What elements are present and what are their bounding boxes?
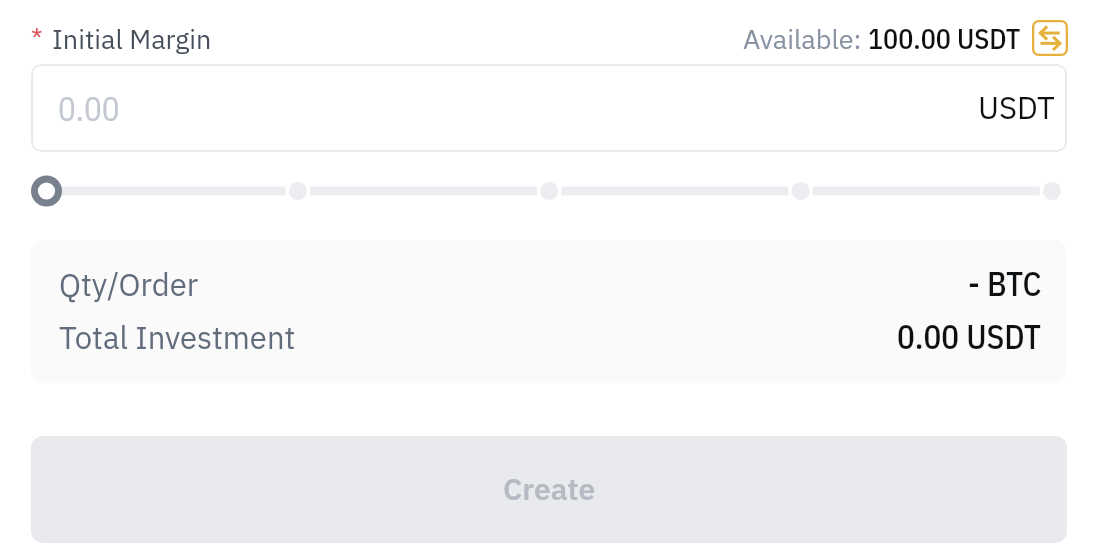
button[interactable]: 0.00 — [31, 64, 1067, 152]
staticText: - BTC — [968, 262, 1042, 304]
staticText: 0.00 — [58, 87, 120, 130]
staticText: USDT — [978, 85, 1055, 132]
staticText: 100.00 USDT — [868, 20, 1021, 54]
button[interactable]: Create — [31, 436, 1067, 543]
button[interactable]: Transfer funds — [1032, 20, 1068, 56]
staticText: 0.00 USDT — [897, 315, 1042, 357]
staticText: * — [31, 20, 43, 54]
staticText: Initial Margin — [52, 20, 212, 54]
staticText: Qty/Order — [59, 262, 199, 304]
staticText: Available: — [743, 20, 868, 54]
button[interactable] — [31, 175, 1067, 207]
staticText: Total Investment — [59, 315, 296, 357]
staticText: Create — [503, 467, 596, 512]
